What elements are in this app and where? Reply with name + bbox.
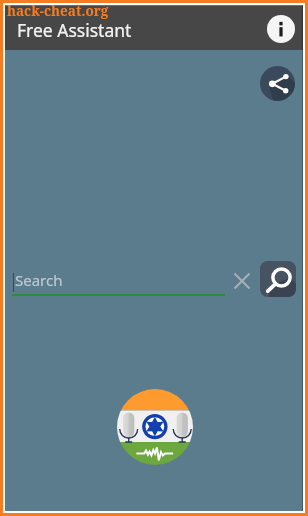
- staticText: Search: [15, 270, 63, 290]
- button[interactable]: Clear: [229, 268, 255, 294]
- button[interactable]: Assistant logo: [117, 389, 193, 465]
- button[interactable]: Share: [260, 66, 295, 101]
- button[interactable]: Search: [12, 267, 225, 301]
- staticText: hack-cheat.org: [7, 2, 109, 20]
- button[interactable]: Info: [267, 15, 295, 43]
- staticText: Free Assistant: [17, 18, 132, 42]
- button[interactable]: Search: [260, 261, 296, 297]
